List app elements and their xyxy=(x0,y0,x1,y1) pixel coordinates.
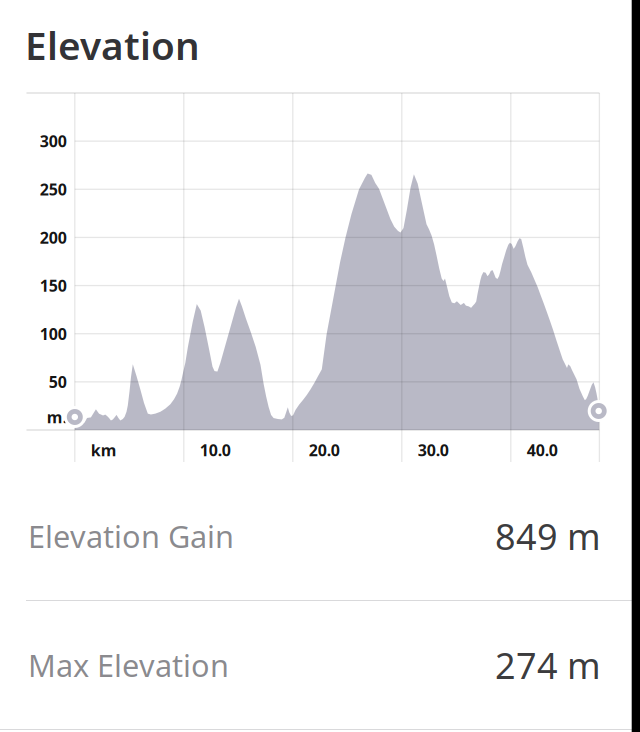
button[interactable]: Max Elevation xyxy=(0,601,632,729)
staticText: 30.0 xyxy=(418,439,449,461)
staticText: km xyxy=(91,439,117,461)
button[interactable]: Route start xyxy=(63,405,87,429)
staticText: Elevation Gain xyxy=(28,516,234,556)
staticText: Elevation xyxy=(25,19,200,71)
staticText: 300 xyxy=(40,130,67,152)
staticText: 100 xyxy=(40,323,67,344)
staticText: 250 xyxy=(40,179,67,200)
staticText: 150 xyxy=(40,275,67,296)
staticText: 849 m xyxy=(495,512,601,560)
staticText: 40.0 xyxy=(527,439,558,461)
staticText: Max Elevation xyxy=(28,645,229,685)
staticText: 20.0 xyxy=(309,439,340,461)
staticText: m. xyxy=(47,406,67,428)
staticText: 50 xyxy=(49,371,67,392)
button[interactable]: Route end xyxy=(587,399,611,423)
button[interactable]: Elevation Gain xyxy=(0,472,632,600)
staticText: 200 xyxy=(40,227,67,248)
staticText: 274 m xyxy=(495,641,601,689)
staticText: 10.0 xyxy=(200,439,231,461)
